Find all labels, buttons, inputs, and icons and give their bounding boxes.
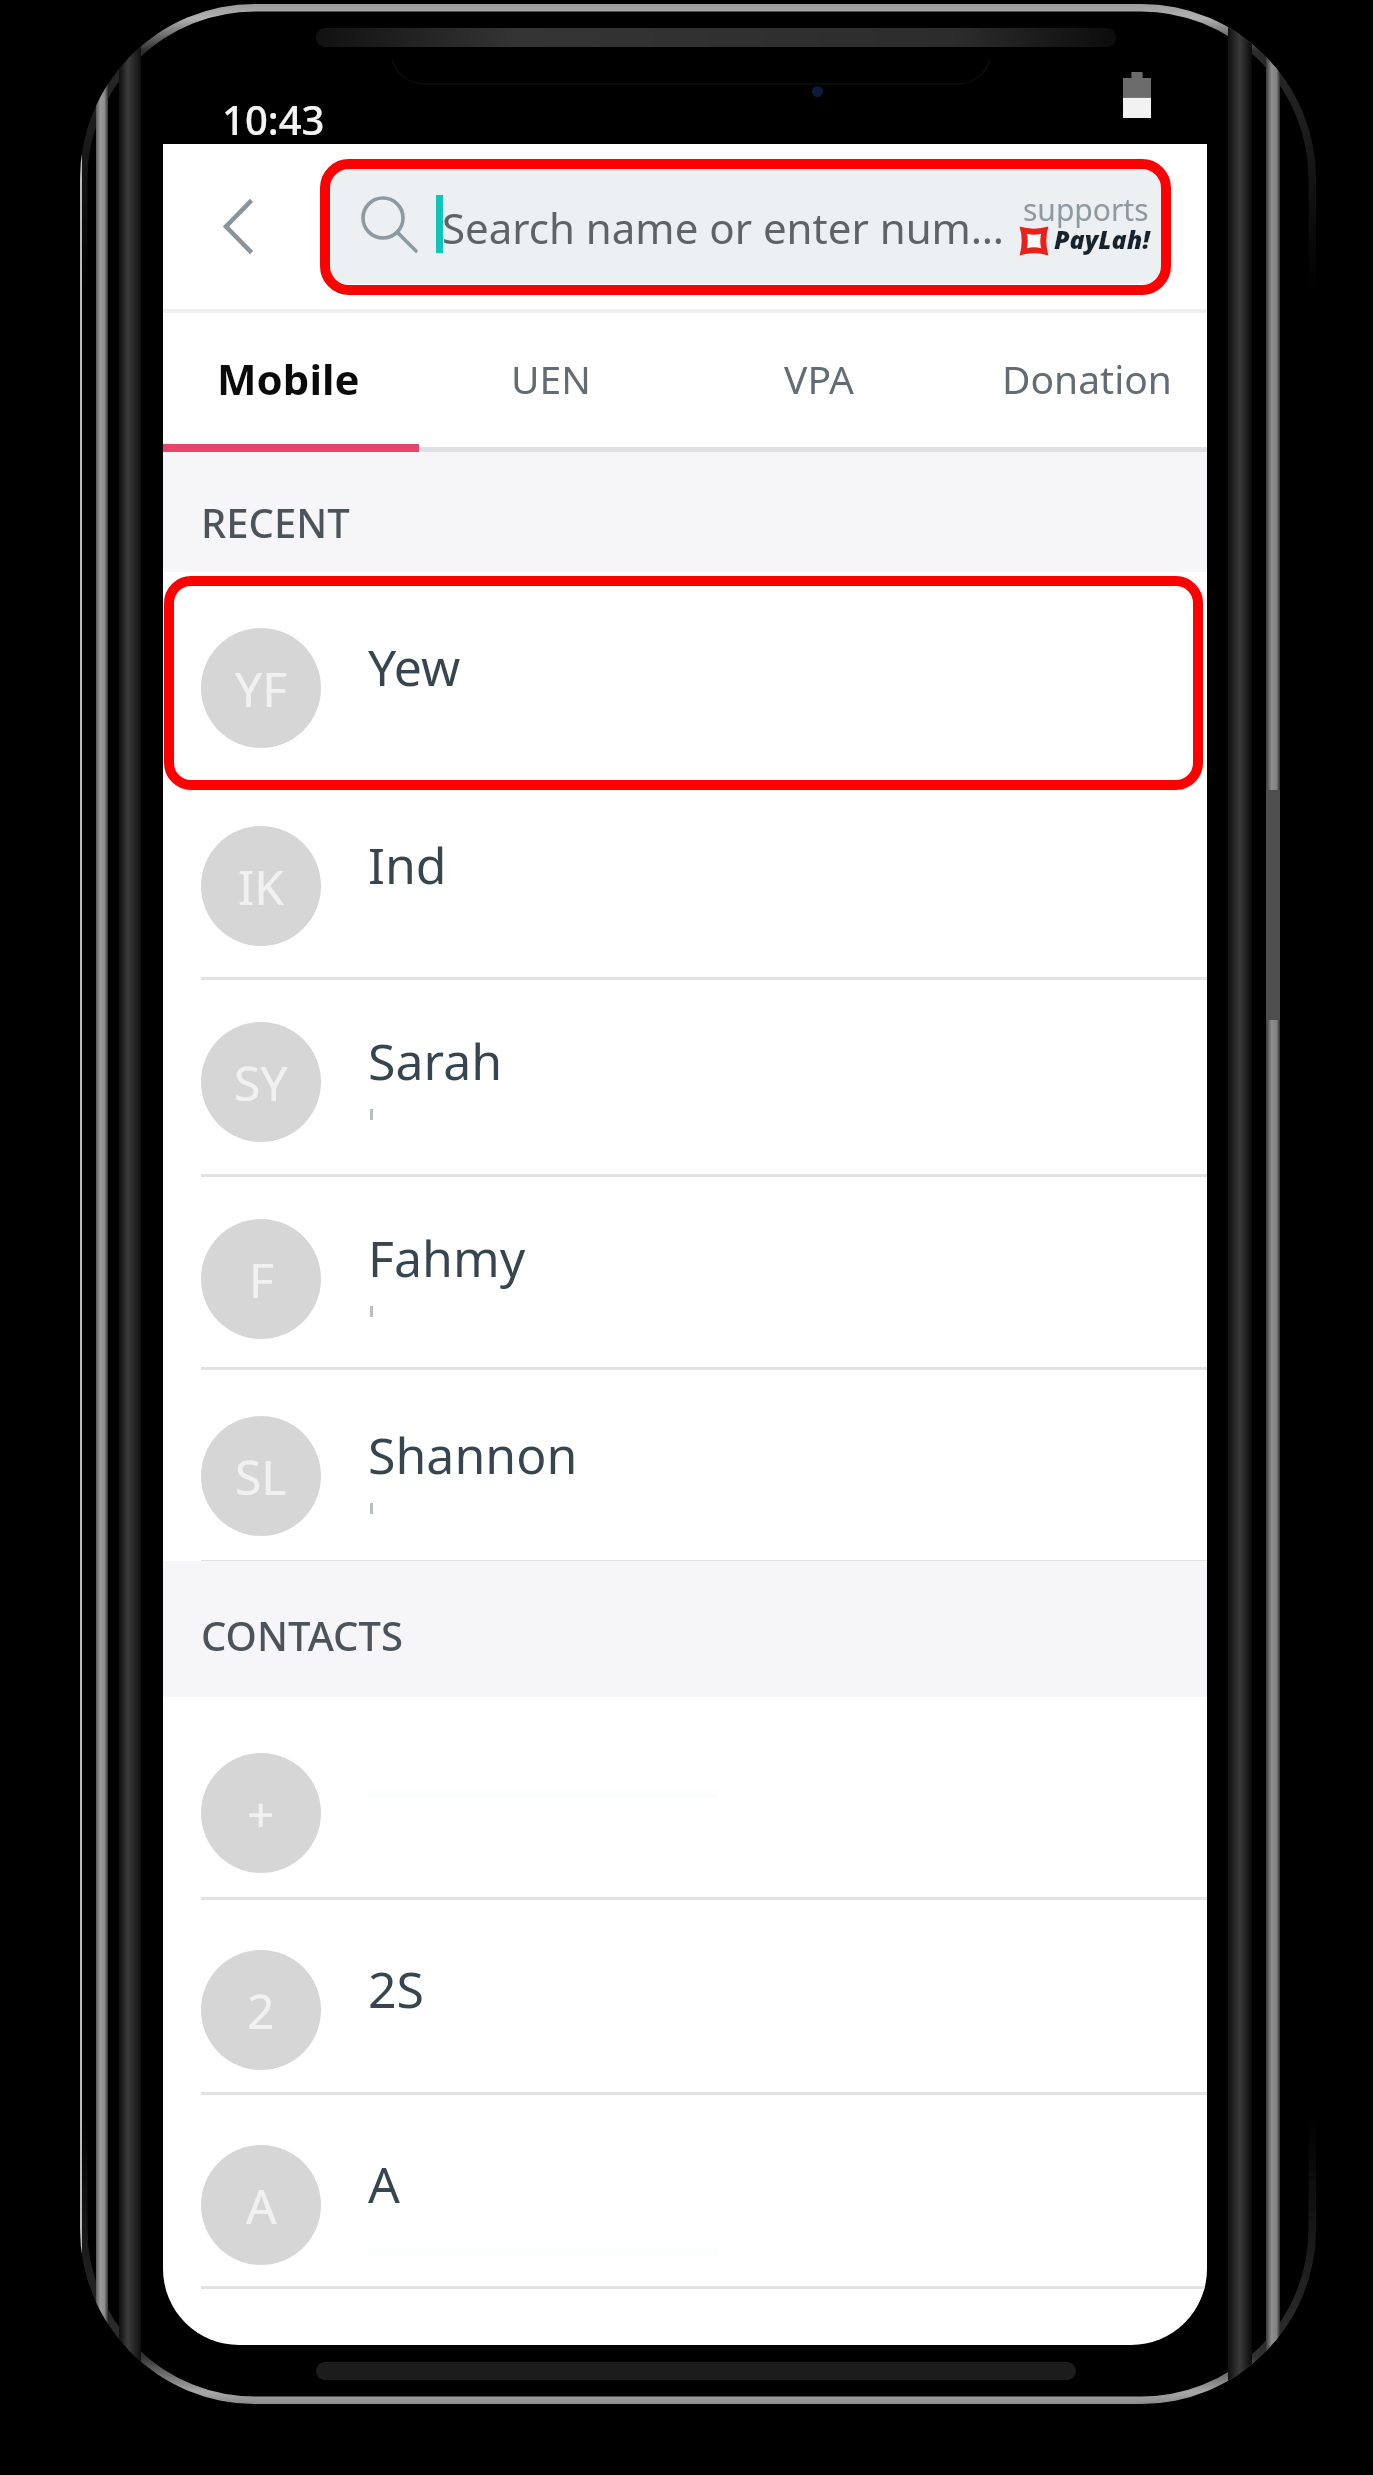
button[interactable]: Donation [962,312,1207,445]
staticText: VPA [784,352,854,405]
staticText: Shannon [368,1421,578,1489]
staticText: SY [234,1050,288,1115]
staticText: Search name or enter num… [442,199,1005,256]
staticText: Mobile [217,350,360,407]
staticText: CONTACTS [201,1608,403,1662]
button[interactable]: SY [163,966,1207,1159]
button[interactable]: UEN [426,312,676,445]
staticText: + [247,1781,275,1846]
staticText: SL [235,1444,287,1509]
button[interactable]: Search name or enter num… [331,168,1161,284]
button[interactable]: 2 [163,1894,1207,2087]
button[interactable]: SL [163,1360,1207,1553]
button[interactable]: Back [173,152,303,300]
staticText: PayLah! [1054,222,1150,256]
button[interactable]: IK [163,770,1207,963]
button[interactable]: YF [163,572,1207,765]
button[interactable]: Mobile [163,312,413,445]
staticText: 10:43 [222,92,325,146]
button[interactable]: F [163,1163,1207,1356]
staticText: 2 [247,1978,275,2043]
button[interactable]: A [163,2089,1207,2282]
staticText: YF [235,656,288,721]
staticText: F [249,1247,274,1312]
staticText: Fahmy [368,1224,526,1292]
staticText: IK [238,854,284,919]
button[interactable]: VPA [694,312,944,445]
staticText: Sarah [368,1027,503,1095]
staticText: 2S [368,1955,425,2023]
staticText: supports [1023,189,1149,230]
button[interactable]: + [163,1697,1207,1890]
staticText: RECENT [201,495,350,549]
staticText: Ind [368,831,447,899]
staticText: UEN [511,352,591,405]
staticText: A [368,2150,400,2218]
staticText: Donation [1002,352,1172,405]
staticText: Yew [368,633,461,701]
staticText: A [246,2173,277,2238]
